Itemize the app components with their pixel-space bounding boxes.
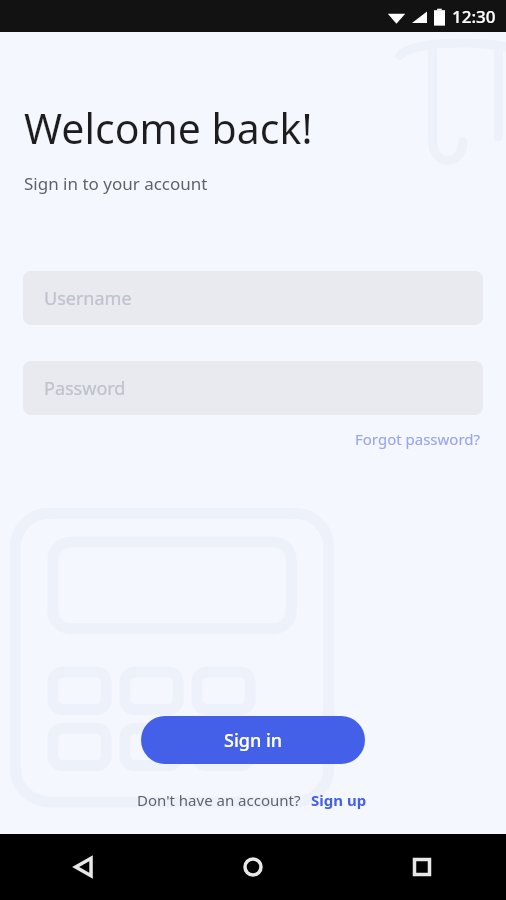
button[interactable]: Forgot password?	[353, 423, 483, 455]
button[interactable]: Sign in	[141, 716, 365, 764]
button[interactable]: Home	[168, 834, 337, 900]
staticText: 12:30	[452, 5, 496, 28]
button[interactable]: Recent apps	[337, 834, 506, 900]
button[interactable]: Username	[23, 271, 483, 325]
staticText: Forgot password?	[355, 429, 481, 449]
staticText: Sign in to your account	[24, 172, 208, 195]
staticText: Welcome back!	[24, 100, 313, 156]
staticText: Sign up	[311, 790, 367, 810]
button[interactable]: Back	[0, 834, 168, 900]
staticText: Password	[44, 376, 126, 401]
button[interactable]: Sign up	[309, 786, 369, 814]
button[interactable]: Password	[23, 361, 483, 415]
staticText: Username	[44, 286, 132, 311]
staticText: Sign in	[224, 728, 283, 753]
staticText: Don't have an account?	[137, 790, 301, 810]
